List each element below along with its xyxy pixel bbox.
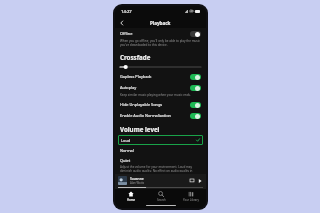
staticText: Hide Unplayable Songs <box>120 102 163 107</box>
staticText: Crossfade <box>120 53 151 61</box>
button[interactable]: Play <box>196 177 203 184</box>
staticText: Enable Audio Normalization <box>120 113 171 118</box>
button[interactable]: Connect to a device <box>189 178 195 184</box>
staticText: 14:27 <box>121 9 132 15</box>
button[interactable]: Home <box>115 189 146 203</box>
staticText: Normal <box>120 148 134 153</box>
staticText: Alan Watts <box>130 181 145 185</box>
staticText: Quiet <box>120 158 131 163</box>
button[interactable]: Normal <box>115 145 206 155</box>
button[interactable]: Your Library <box>176 189 206 203</box>
button[interactable]: Loud <box>118 135 203 145</box>
staticText: Offline <box>120 31 133 36</box>
button[interactable]: Back <box>118 19 126 27</box>
staticText: Loud <box>121 138 131 143</box>
button[interactable]: Offline <box>115 28 206 39</box>
button[interactable]: Autoplay <box>115 82 206 93</box>
staticText: Your Library <box>183 198 199 202</box>
button[interactable]: Gapless Playback <box>115 71 206 82</box>
staticText: Search <box>157 198 166 202</box>
staticText: Suzanne <box>130 176 144 181</box>
button[interactable]: Suzanne <box>115 174 206 187</box>
button[interactable]: Search <box>146 189 176 203</box>
staticText: When you go offline, you'll only be able… <box>120 39 200 47</box>
button[interactable]: Enable Audio Normalization <box>115 110 206 121</box>
staticText: Volume level <box>120 125 160 133</box>
staticText: Home <box>127 198 135 202</box>
button[interactable]: Quiet <box>115 155 206 165</box>
staticText: Gapless Playback <box>120 74 152 79</box>
staticText: Adjust the volume for your environment. … <box>120 165 200 172</box>
staticText: Keep similar music playing when your mus… <box>120 93 191 97</box>
staticText: Playback <box>150 20 171 26</box>
button[interactable]: Hide Unplayable Songs <box>115 99 206 110</box>
staticText: Autoplay <box>120 85 137 90</box>
